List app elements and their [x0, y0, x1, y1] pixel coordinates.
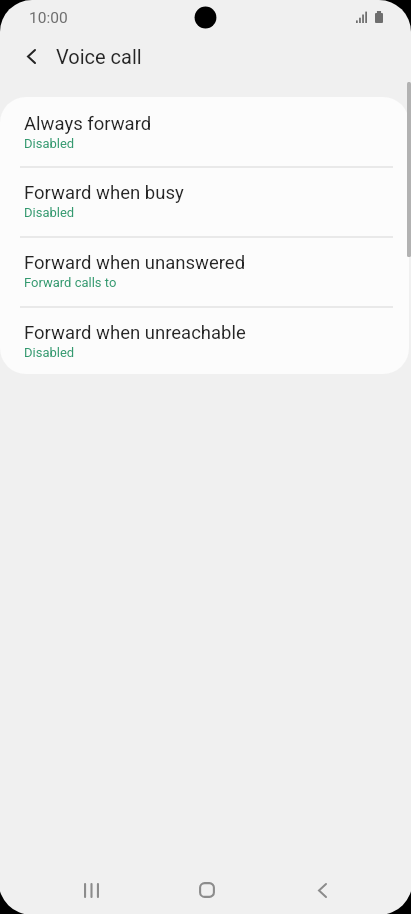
button[interactable]: Back: [265, 866, 380, 914]
staticText: 10:00: [29, 9, 68, 27]
staticText: Voice call: [56, 45, 142, 68]
button[interactable]: Recent apps: [34, 866, 149, 914]
button[interactable]: Forward when unanswered: [0, 236, 409, 306]
button[interactable]: Home: [149, 866, 264, 914]
button[interactable]: Forward when unreachable: [0, 306, 409, 373]
staticText: Disabled: [24, 205, 75, 220]
staticText: Disabled: [24, 345, 75, 360]
staticText: Forward when busy: [24, 182, 184, 204]
staticText: Forward when unreachable: [24, 322, 246, 344]
staticText: Forward when unanswered: [24, 252, 246, 274]
button[interactable]: Always forward: [0, 97, 409, 166]
staticText: Always forward: [24, 113, 152, 135]
button[interactable]: Forward when busy: [0, 166, 409, 236]
staticText: Forward calls to: [24, 275, 117, 290]
button[interactable]: Navigate up: [9, 34, 53, 78]
staticText: Disabled: [24, 136, 75, 151]
